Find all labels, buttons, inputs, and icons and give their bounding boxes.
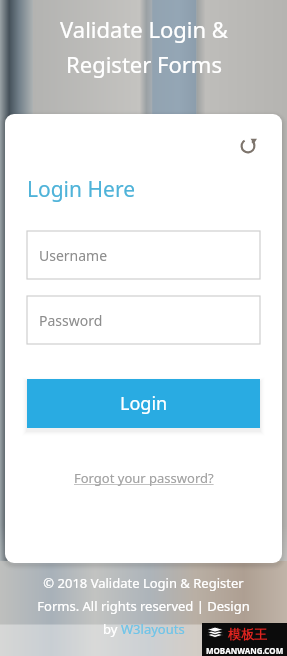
staticText: Password bbox=[39, 311, 103, 330]
button[interactable]: Forgot your password? bbox=[74, 469, 214, 487]
button[interactable]: Login bbox=[27, 379, 260, 428]
staticText: Login Here bbox=[27, 175, 135, 204]
staticText: 模板王 bbox=[228, 626, 267, 642]
button[interactable]: Username bbox=[27, 231, 260, 279]
staticText: Register Forms bbox=[66, 49, 222, 79]
staticText: Login bbox=[120, 391, 168, 416]
staticText: Username bbox=[39, 246, 108, 265]
button[interactable]: Password bbox=[27, 296, 260, 344]
staticText: Forms. All rights reserved | Design bbox=[37, 597, 250, 615]
button[interactable]: W3layouts bbox=[121, 620, 185, 638]
staticText: MOBANWANG.COM bbox=[206, 645, 284, 656]
staticText: Validate Login & bbox=[60, 14, 228, 44]
staticText: W3layouts bbox=[121, 620, 185, 638]
button[interactable]: Refresh bbox=[234, 132, 262, 160]
staticText: by bbox=[103, 620, 121, 638]
staticText: © 2018 Validate Login & Register bbox=[43, 574, 244, 592]
staticText: Forgot your password? bbox=[74, 469, 214, 487]
